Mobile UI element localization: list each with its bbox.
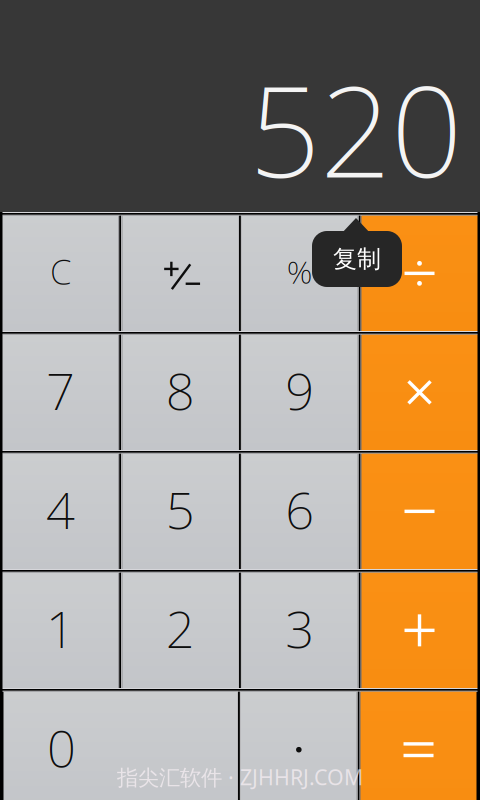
- button[interactable]: 1: [2, 573, 118, 688]
- button[interactable]: 2: [122, 573, 238, 688]
- staticText: 0: [47, 714, 76, 781]
- staticText: 复制: [333, 244, 381, 274]
- button[interactable]: [361, 573, 477, 688]
- button[interactable]: [241, 692, 357, 800]
- staticText: 7: [46, 357, 75, 424]
- button[interactable]: 6: [242, 454, 358, 569]
- staticText: 5: [166, 476, 195, 543]
- staticText: 6: [285, 476, 314, 543]
- button[interactable]: 3: [242, 573, 358, 688]
- button[interactable]: [361, 335, 477, 450]
- staticText: 1: [46, 595, 75, 662]
- button[interactable]: [360, 692, 476, 800]
- button[interactable]: [361, 454, 477, 569]
- button[interactable]: 4: [2, 454, 118, 569]
- staticText: 4: [46, 476, 75, 543]
- staticText: C: [50, 248, 71, 294]
- staticText: %: [287, 250, 313, 293]
- button[interactable]: [122, 216, 238, 331]
- staticText: 指尖汇软件 · ZJHHRJ.COM: [117, 763, 363, 791]
- button[interactable]: 7: [2, 335, 118, 450]
- staticText: 520: [249, 46, 462, 212]
- button[interactable]: 8: [122, 335, 238, 450]
- staticText: 3: [285, 595, 314, 662]
- button[interactable]: 复制: [312, 211, 402, 281]
- button[interactable]: C: [2, 216, 118, 331]
- button[interactable]: [361, 216, 477, 331]
- staticText: 9: [285, 357, 314, 424]
- staticText: 8: [166, 357, 195, 424]
- button[interactable]: 0: [3, 692, 237, 800]
- staticText: 2: [166, 595, 195, 662]
- button[interactable]: 9: [242, 335, 358, 450]
- button[interactable]: %: [242, 216, 358, 331]
- button[interactable]: 5: [122, 454, 238, 569]
